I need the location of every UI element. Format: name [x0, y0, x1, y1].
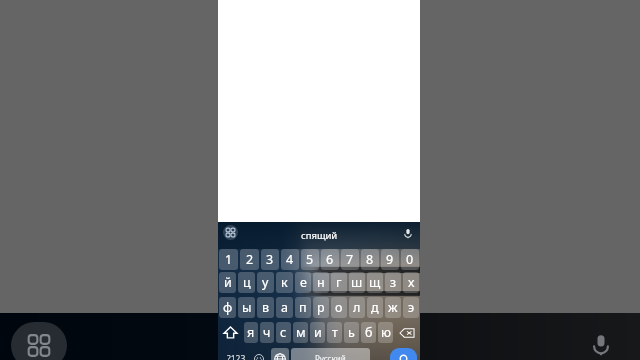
button[interactable]: 6	[321, 249, 339, 270]
button[interactable]: ж	[385, 297, 401, 318]
staticText: 8	[366, 251, 374, 268]
button[interactable]: ф	[219, 297, 236, 318]
button[interactable]: ч	[260, 322, 274, 343]
button[interactable]: з	[385, 272, 401, 293]
staticText: н	[317, 274, 325, 291]
staticText: 6	[326, 251, 334, 268]
staticText: л	[353, 299, 361, 316]
staticText: 5	[306, 251, 314, 268]
button[interactable]: 5	[301, 249, 319, 270]
button[interactable]: р	[313, 297, 329, 318]
button[interactable]: 4	[281, 249, 299, 270]
staticText: к	[281, 274, 288, 291]
staticText: м	[296, 324, 306, 341]
button[interactable]: Change language	[271, 348, 289, 360]
button[interactable]: 8	[361, 249, 379, 270]
button[interactable]: 7	[341, 249, 359, 270]
staticText: т	[332, 324, 338, 341]
button[interactable]: и	[310, 322, 325, 343]
staticText: ч	[263, 324, 271, 341]
button[interactable]: 0	[401, 249, 419, 270]
staticText: х	[408, 274, 415, 291]
staticText: с	[280, 324, 287, 341]
button[interactable]: у	[257, 272, 274, 293]
staticText: ?123	[227, 353, 246, 360]
button[interactable]: Backspace	[394, 322, 420, 343]
staticText: ж	[388, 299, 398, 316]
button[interactable]: App drawer	[11, 322, 67, 360]
button[interactable]: э	[403, 297, 419, 318]
staticText: спящий	[301, 229, 338, 242]
button[interactable]: м	[293, 322, 308, 343]
staticText: 0	[406, 251, 414, 268]
button[interactable]: Voice search	[588, 331, 614, 357]
staticText: е	[300, 274, 307, 291]
staticText: 4	[286, 251, 294, 268]
staticText: 9	[386, 251, 394, 268]
staticText: 7	[346, 251, 354, 268]
staticText: ш	[351, 274, 363, 291]
button[interactable]: Русский	[291, 348, 370, 360]
button[interactable]: д	[367, 297, 383, 318]
staticText: р	[317, 299, 325, 316]
button[interactable]: ц	[238, 272, 255, 293]
button[interactable]: Voice input	[402, 227, 414, 239]
staticText: о	[335, 299, 343, 316]
staticText: у	[262, 274, 269, 291]
staticText: ф	[223, 299, 233, 316]
staticText: ы	[242, 299, 252, 316]
staticText: я	[247, 324, 255, 341]
button[interactable]: ы	[238, 297, 255, 318]
button[interactable]: ь	[344, 322, 359, 343]
staticText: 2	[246, 251, 254, 268]
staticText: щ	[369, 274, 381, 291]
staticText: й	[224, 274, 232, 291]
button[interactable]: Keyboard menu	[223, 225, 238, 240]
staticText: з	[390, 274, 397, 291]
button[interactable]: х	[403, 272, 419, 293]
button[interactable]: п	[295, 297, 311, 318]
button[interactable]: о	[331, 297, 347, 318]
button[interactable]: й	[219, 272, 236, 293]
staticText: 3	[266, 251, 274, 268]
staticText: в	[262, 299, 270, 316]
button[interactable]: в	[257, 297, 274, 318]
staticText: б	[365, 324, 373, 341]
button[interactable]: л	[349, 297, 365, 318]
staticText: ь	[348, 324, 355, 341]
button[interactable]: а	[276, 297, 293, 318]
staticText: 1	[225, 251, 233, 268]
staticText: Русский	[315, 353, 346, 360]
button[interactable]: 3	[261, 249, 279, 270]
staticText: э	[408, 299, 415, 316]
button[interactable]: е	[295, 272, 311, 293]
button[interactable]: 2	[240, 249, 259, 270]
button[interactable]: я	[244, 322, 258, 343]
button[interactable]: щ	[367, 272, 383, 293]
button[interactable]: 1	[219, 249, 238, 270]
button[interactable]: г	[331, 272, 347, 293]
staticText: г	[336, 274, 342, 291]
button[interactable]: ю	[378, 322, 393, 343]
staticText: ц	[243, 274, 251, 291]
staticText: п	[299, 299, 307, 316]
button[interactable]: 9	[381, 249, 399, 270]
button[interactable]: ш	[349, 272, 365, 293]
staticText: и	[314, 324, 322, 341]
button[interactable]: б	[361, 322, 376, 343]
staticText: а	[281, 299, 288, 316]
staticText: ю	[381, 324, 391, 341]
button[interactable]: Shift	[218, 322, 243, 343]
staticText: д	[371, 299, 379, 316]
button[interactable]: с	[276, 322, 291, 343]
button[interactable]: Search	[390, 348, 417, 360]
button[interactable]: Emoji	[250, 348, 268, 360]
button[interactable]: ?123	[223, 348, 249, 360]
button[interactable]: т	[327, 322, 342, 343]
button[interactable]: к	[276, 272, 293, 293]
button[interactable]: н	[313, 272, 329, 293]
